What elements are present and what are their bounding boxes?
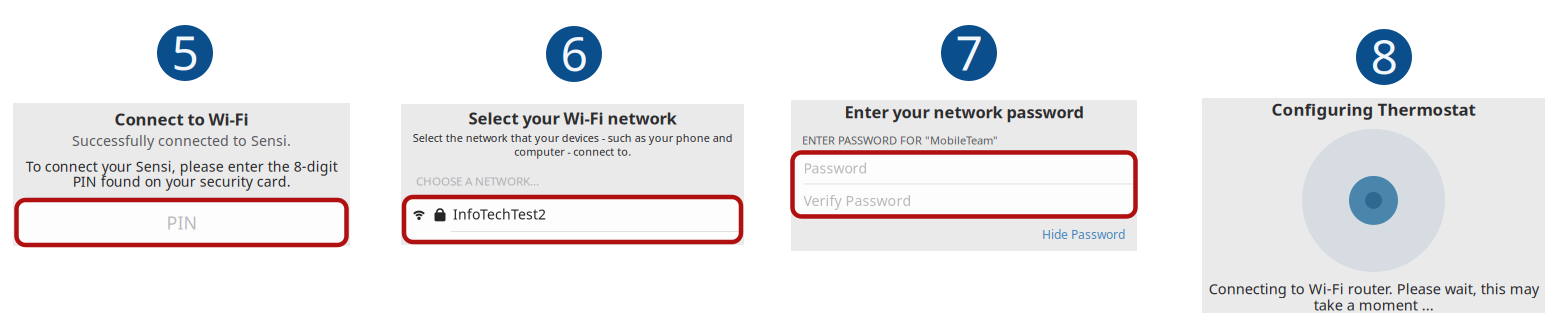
staticText: 7: [955, 20, 982, 84]
staticText: 8: [1370, 24, 1397, 88]
staticText: InfoTechTest2: [453, 205, 546, 223]
staticText: CHOOSE A NETWORK...: [416, 173, 539, 189]
staticText: 6: [560, 21, 587, 85]
staticText: Password: [803, 159, 867, 177]
staticText: Verify Password: [803, 191, 911, 210]
button[interactable]: Hide Password: [1042, 222, 1137, 246]
staticText: Successfully connected to Sensi.: [72, 131, 291, 150]
staticText: PIN: [166, 211, 196, 234]
staticText: ENTER PASSWORD FOR "MobileTeam": [802, 133, 998, 147]
staticText: Select the network that your devices - s…: [412, 131, 732, 158]
staticText: Connect to Wi-Fi: [114, 108, 248, 130]
button[interactable]: Password: [792, 152, 1135, 216]
staticText: Enter your network password: [844, 101, 1083, 123]
button[interactable]: PIN: [16, 200, 346, 245]
staticText: Hide Password: [1042, 226, 1125, 242]
staticText: Select your Wi-Fi network: [468, 107, 676, 129]
staticText: To connect your Sensi, please enter the …: [25, 159, 337, 189]
staticText: Configuring Thermostat: [1271, 98, 1475, 120]
staticText: 5: [171, 20, 198, 84]
staticText: Connecting to Wi-Fi router. Please wait,…: [1208, 280, 1538, 313]
button[interactable]: InfoTechTest2: [404, 197, 741, 242]
